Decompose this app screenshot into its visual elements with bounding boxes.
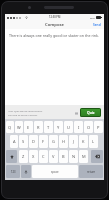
staticText: I (78, 125, 80, 130)
button[interactable]: space (32, 165, 78, 178)
button[interactable]: R (34, 121, 43, 133)
button[interactable]: M (79, 150, 88, 163)
staticText: J (73, 139, 75, 144)
button[interactable]: Q (6, 121, 14, 133)
button[interactable]: K (79, 135, 88, 148)
staticText: E (27, 125, 30, 130)
staticText: Quiz (87, 110, 95, 115)
button[interactable]: C (39, 150, 48, 163)
button[interactable]: Z (19, 150, 28, 163)
button[interactable]: U (64, 121, 73, 133)
button[interactable]: X (29, 150, 38, 163)
staticText: B (62, 154, 65, 159)
button[interactable]: Shift (6, 150, 17, 163)
button[interactable]: 123 (6, 165, 20, 178)
staticText: W (17, 125, 21, 130)
staticText: There is always one really good ice skat… (9, 33, 99, 38)
button[interactable]: T (44, 121, 53, 133)
staticText: X (32, 154, 35, 159)
button[interactable]: return (79, 165, 103, 178)
button[interactable]: S (19, 135, 28, 148)
button[interactable]: L (89, 135, 98, 148)
staticText: V (52, 154, 55, 159)
button[interactable]: There is always one really good ice skat… (5, 29, 104, 105)
staticText: 98% (90, 16, 95, 19)
staticText: Y (57, 125, 60, 130)
button[interactable]: Options (74, 111, 78, 115)
staticText: Send (93, 23, 101, 27)
button[interactable]: A (10, 135, 18, 148)
staticText: G (52, 139, 55, 144)
staticText: D (32, 139, 35, 144)
staticText: Z (22, 154, 25, 159)
staticText: Your Quiz will be anonymous. (8, 109, 43, 112)
button[interactable]: Dictate (21, 165, 31, 178)
staticText: C (42, 154, 45, 159)
button[interactable]: G (49, 135, 58, 148)
staticText: L (92, 139, 95, 144)
button[interactable]: N (69, 150, 78, 163)
staticText: R (37, 125, 40, 130)
button[interactable]: Backspace (91, 150, 103, 163)
button[interactable]: I (74, 121, 83, 133)
button[interactable]: F (39, 135, 48, 148)
staticText: 12:30 PM (49, 15, 61, 19)
button[interactable]: P (94, 121, 103, 133)
staticText: N (72, 154, 76, 159)
staticText: Compose (45, 22, 64, 28)
staticText: We love Grub #8 Anyone. (8, 113, 38, 116)
staticText: A (13, 139, 16, 144)
staticText: U (67, 125, 70, 130)
staticText: T (47, 125, 50, 130)
button[interactable]: V (49, 150, 58, 163)
staticText: M (82, 154, 86, 159)
staticText: O (87, 125, 91, 130)
button[interactable]: H (59, 135, 68, 148)
button[interactable]: Y (54, 121, 63, 133)
staticText: S (22, 139, 25, 144)
button[interactable]: B (59, 150, 68, 163)
button[interactable]: D (29, 135, 38, 148)
staticText: F (42, 139, 45, 144)
staticText: K (82, 139, 85, 144)
button[interactable]: W (15, 121, 23, 133)
button[interactable]: E (24, 121, 33, 133)
staticText: space (51, 170, 59, 174)
button[interactable]: O (84, 121, 93, 133)
button[interactable]: Send (90, 22, 104, 28)
staticText: return (87, 170, 96, 174)
staticText: H (62, 139, 65, 144)
button[interactable]: Quiz (80, 108, 101, 117)
staticText: P (97, 125, 100, 130)
staticText: Q (8, 125, 12, 130)
staticText: 123 (11, 170, 16, 174)
button[interactable]: J (69, 135, 78, 148)
